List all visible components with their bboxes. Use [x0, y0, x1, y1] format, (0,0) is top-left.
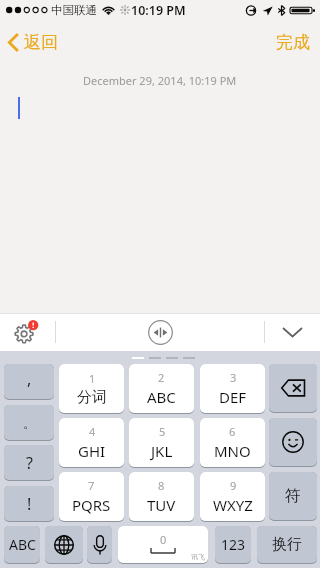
button[interactable]: 换行	[257, 526, 317, 563]
button[interactable]: ABC	[4, 526, 40, 563]
button[interactable]: Move cursor	[143, 315, 177, 349]
staticText: 5	[159, 424, 166, 439]
button[interactable]: Voice input	[87, 526, 112, 563]
button[interactable]: 完成	[266, 25, 320, 60]
button[interactable]: 5	[129, 418, 194, 467]
staticText: ABC	[9, 535, 36, 554]
button[interactable]: 。	[4, 405, 54, 440]
staticText: ABC	[147, 387, 176, 407]
button[interactable]: 2	[129, 364, 194, 413]
staticText: WXYZ	[213, 495, 253, 515]
staticText: 讯飞	[191, 552, 205, 561]
staticText: ?	[26, 452, 33, 474]
staticText: 2	[158, 370, 165, 385]
staticText: 换行	[272, 535, 302, 554]
button[interactable]: Globe	[45, 526, 83, 563]
staticText: 6	[229, 424, 236, 439]
staticText: December 29, 2014, 10:19 PM	[83, 73, 237, 88]
button[interactable]: Space	[118, 526, 208, 563]
button[interactable]: !	[4, 486, 54, 521]
button[interactable]: 4	[59, 418, 124, 467]
staticText: TUV	[147, 495, 176, 515]
button[interactable]: 123	[215, 526, 251, 563]
staticText: ,	[27, 368, 32, 390]
staticText: 符	[285, 486, 301, 506]
button[interactable]: 3	[200, 364, 265, 413]
staticText: 8	[158, 478, 165, 493]
staticText: 返回	[24, 32, 58, 53]
staticText: 10:19 PM	[131, 2, 186, 19]
button[interactable]: Delete	[269, 364, 317, 412]
button[interactable]: 6	[200, 418, 265, 467]
staticText: 7	[88, 478, 95, 493]
staticText: MNO	[214, 441, 251, 461]
button[interactable]: 符	[269, 472, 317, 520]
button[interactable]: Hide keyboard	[276, 316, 308, 348]
button[interactable]: Settings	[8, 314, 44, 350]
staticText: 。	[23, 415, 36, 431]
button[interactable]: 7	[59, 472, 124, 521]
staticText: 4	[89, 424, 96, 439]
button[interactable]: ?	[4, 445, 54, 480]
staticText: GHI	[78, 441, 106, 461]
staticText: 1	[89, 371, 96, 386]
staticText: !	[27, 493, 32, 515]
staticText: 分词	[77, 388, 107, 407]
staticText: DEF	[219, 387, 247, 407]
staticText: 中国联通	[51, 3, 97, 17]
staticText: 123	[221, 535, 246, 554]
staticText: 3	[230, 370, 237, 385]
button[interactable]: 8	[129, 472, 194, 521]
button[interactable]: 返回	[0, 25, 70, 60]
staticText: PQRS	[72, 495, 111, 515]
staticText: 9	[230, 478, 237, 493]
staticText: 完成	[276, 32, 310, 53]
staticText: JKL	[151, 441, 173, 461]
button[interactable]: ,	[4, 364, 54, 399]
button[interactable]: 9	[200, 472, 265, 521]
button[interactable]: 1	[59, 364, 124, 413]
button[interactable]: Emoji	[269, 418, 317, 466]
staticText: 0	[160, 532, 167, 547]
